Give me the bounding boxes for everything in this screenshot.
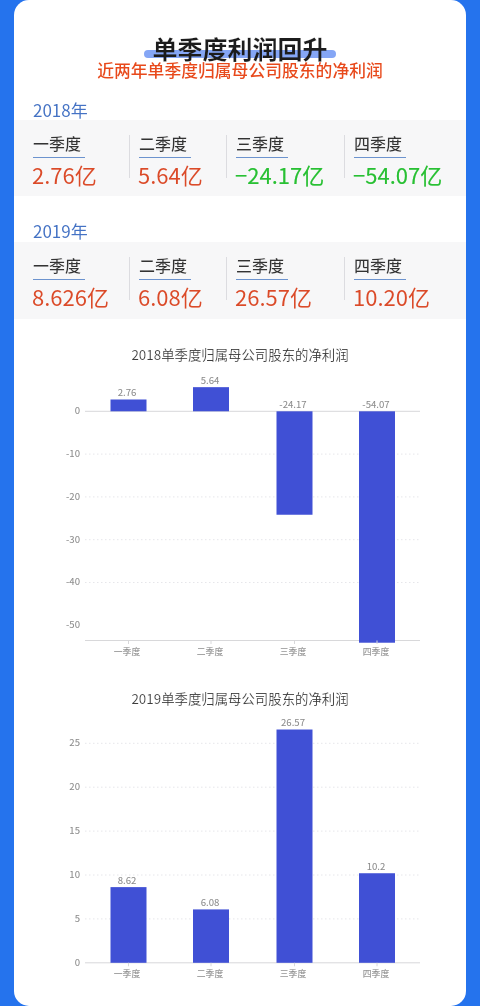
staticText: −54.07亿: [353, 158, 443, 190]
staticText: 26.57: [253, 715, 333, 729]
staticText: 8.626亿: [32, 280, 109, 312]
staticText: -50: [30, 617, 80, 631]
staticText: 三季度: [236, 131, 285, 154]
staticText: 三季度: [253, 967, 333, 980]
staticText: -54.07: [336, 397, 416, 411]
staticText: 0: [30, 403, 80, 417]
staticText: 单季度利润回升: [14, 30, 466, 66]
staticText: 25: [30, 735, 80, 749]
staticText: 三季度: [236, 253, 285, 276]
staticText: 一季度: [87, 967, 167, 980]
staticText: 15: [30, 823, 80, 837]
staticText: 2019单季度归属母公司股东的净利润: [14, 688, 466, 707]
staticText: 8.62: [87, 873, 167, 887]
staticText: 三季度: [253, 645, 333, 658]
staticText: -30: [30, 532, 80, 546]
staticText: -20: [30, 489, 80, 503]
staticText: 10.2: [336, 859, 416, 873]
staticText: 2018年: [33, 97, 88, 122]
staticText: 5: [30, 911, 80, 925]
staticText: 一季度: [33, 131, 82, 154]
staticText: 2.76: [87, 385, 167, 399]
staticText: 20: [30, 779, 80, 793]
staticText: 26.57亿: [235, 280, 312, 312]
staticText: 四季度: [354, 253, 403, 276]
staticText: 二季度: [139, 253, 188, 276]
staticText: 5.64亿: [138, 158, 203, 190]
staticText: 四季度: [336, 645, 416, 658]
staticText: 四季度: [336, 967, 416, 980]
staticText: 二季度: [170, 645, 250, 658]
staticText: -40: [30, 574, 80, 588]
staticText: 一季度: [87, 645, 167, 658]
staticText: 2019年: [33, 218, 88, 243]
staticText: 2.76亿: [32, 158, 97, 190]
staticText: 6.08亿: [138, 280, 203, 312]
staticText: 0: [30, 955, 80, 969]
staticText: 10: [30, 867, 80, 881]
staticText: 2018单季度归属母公司股东的净利润: [14, 344, 466, 363]
staticText: 近两年单季度归属母公司股东的净利润: [14, 58, 466, 82]
staticText: −24.17亿: [235, 158, 325, 190]
staticText: 一季度: [33, 253, 82, 276]
staticText: 10.20亿: [353, 280, 430, 312]
staticText: 二季度: [139, 131, 188, 154]
staticText: -10: [30, 446, 80, 460]
staticText: 四季度: [354, 131, 403, 154]
staticText: 5.64: [170, 373, 250, 387]
staticText: 二季度: [170, 967, 250, 980]
staticText: -24.17: [253, 397, 333, 411]
staticText: 6.08: [170, 895, 250, 909]
